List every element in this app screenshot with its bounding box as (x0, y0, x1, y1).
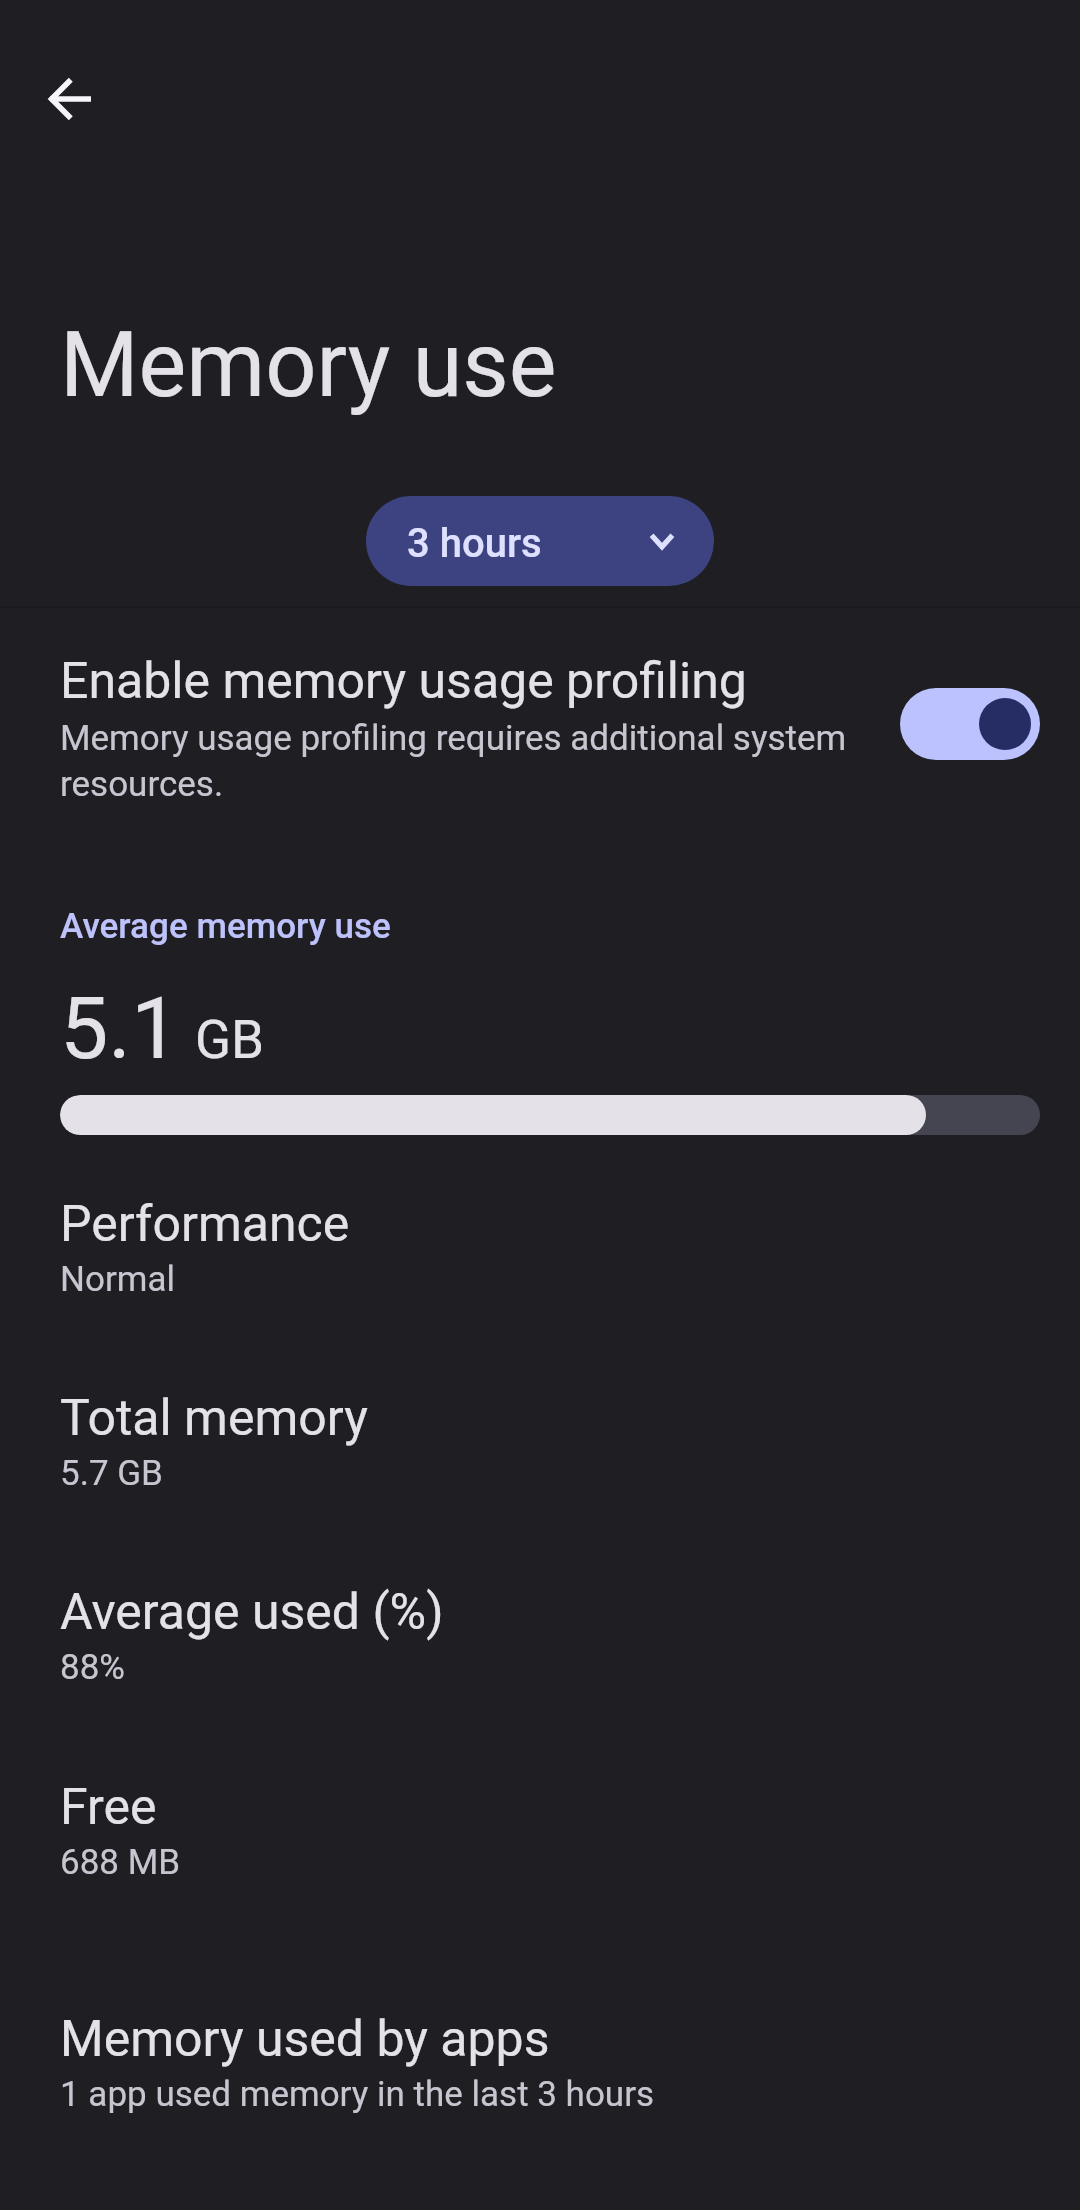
button[interactable]: Performance (0, 1195, 1080, 1335)
staticText: 1 app used memory in the last 3 hours (60, 2074, 655, 2115)
staticText: Normal (60, 1259, 176, 1300)
staticText: 5.1 (60, 978, 180, 1079)
staticText: 3 hours (407, 520, 542, 567)
button[interactable]: Free (0, 1778, 1080, 1918)
staticText: Free (60, 1778, 157, 1837)
staticText: Memory use (60, 313, 557, 418)
button[interactable]: Memory used by apps (0, 2010, 1080, 2150)
staticText: Total memory (60, 1389, 368, 1448)
staticText: Memory usage profiling requires addition… (60, 718, 860, 805)
staticText: Performance (60, 1195, 350, 1254)
staticText: 88% (60, 1647, 125, 1688)
staticText: 688 MB (60, 1842, 181, 1883)
staticText: GB (195, 1009, 265, 1071)
staticText: Average used (%) (60, 1583, 444, 1642)
button[interactable]: Total memory (0, 1389, 1080, 1529)
button[interactable]: Average used (%) (0, 1583, 1080, 1723)
staticText: 5.7 GB (60, 1453, 163, 1494)
staticText: Enable memory usage profiling (60, 652, 747, 711)
button[interactable]: 3 hours (366, 496, 714, 586)
button[interactable]: Enable memory usage profiling (900, 688, 1040, 760)
button[interactable]: Enable memory usage profiling (0, 608, 1080, 840)
staticText: Average memory use (60, 906, 391, 947)
staticText: Memory used by apps (60, 2010, 550, 2069)
button[interactable]: Navigate up (22, 50, 118, 146)
